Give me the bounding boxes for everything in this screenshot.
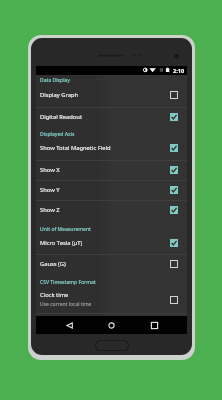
- button[interactable]: Show Z: [36, 202, 187, 221]
- staticText: Data Display: [40, 77, 70, 84]
- staticText: Micro Tesla (µT): [40, 239, 83, 247]
- button[interactable]: Micro Tesla (µT): [36, 235, 187, 255]
- button[interactable]: Home: [101, 316, 121, 334]
- staticText: Display Graph: [40, 91, 79, 99]
- button[interactable]: Recents: [144, 316, 164, 334]
- staticText: Gauss (G): [40, 260, 66, 268]
- button[interactable]: Display Graph: [36, 87, 187, 107]
- staticText: Displayed Axis: [40, 131, 75, 138]
- staticText: Show Total Magnetic Field: [40, 144, 111, 152]
- staticText: Unit of Measurement: [40, 226, 91, 233]
- staticText: Digital Readout: [40, 113, 83, 121]
- button[interactable]: Show Y: [36, 182, 187, 201]
- button[interactable]: Digital Readout: [36, 109, 187, 129]
- staticText: Use current local time: [40, 301, 92, 308]
- button[interactable]: Show X: [36, 162, 187, 181]
- staticText: Show Z: [40, 206, 60, 214]
- staticText: Clock time: [40, 291, 69, 299]
- button[interactable]: Clock time: [36, 290, 187, 313]
- button[interactable]: Show Total Magnetic Field: [36, 140, 187, 160]
- staticText: Show Y: [40, 186, 60, 194]
- staticText: Show X: [40, 166, 60, 174]
- button[interactable]: Gauss (G): [36, 256, 187, 276]
- staticText: CSV Timestamp Format: [40, 279, 96, 286]
- staticText: 2:10: [173, 67, 185, 75]
- button[interactable]: Back: [59, 316, 79, 334]
